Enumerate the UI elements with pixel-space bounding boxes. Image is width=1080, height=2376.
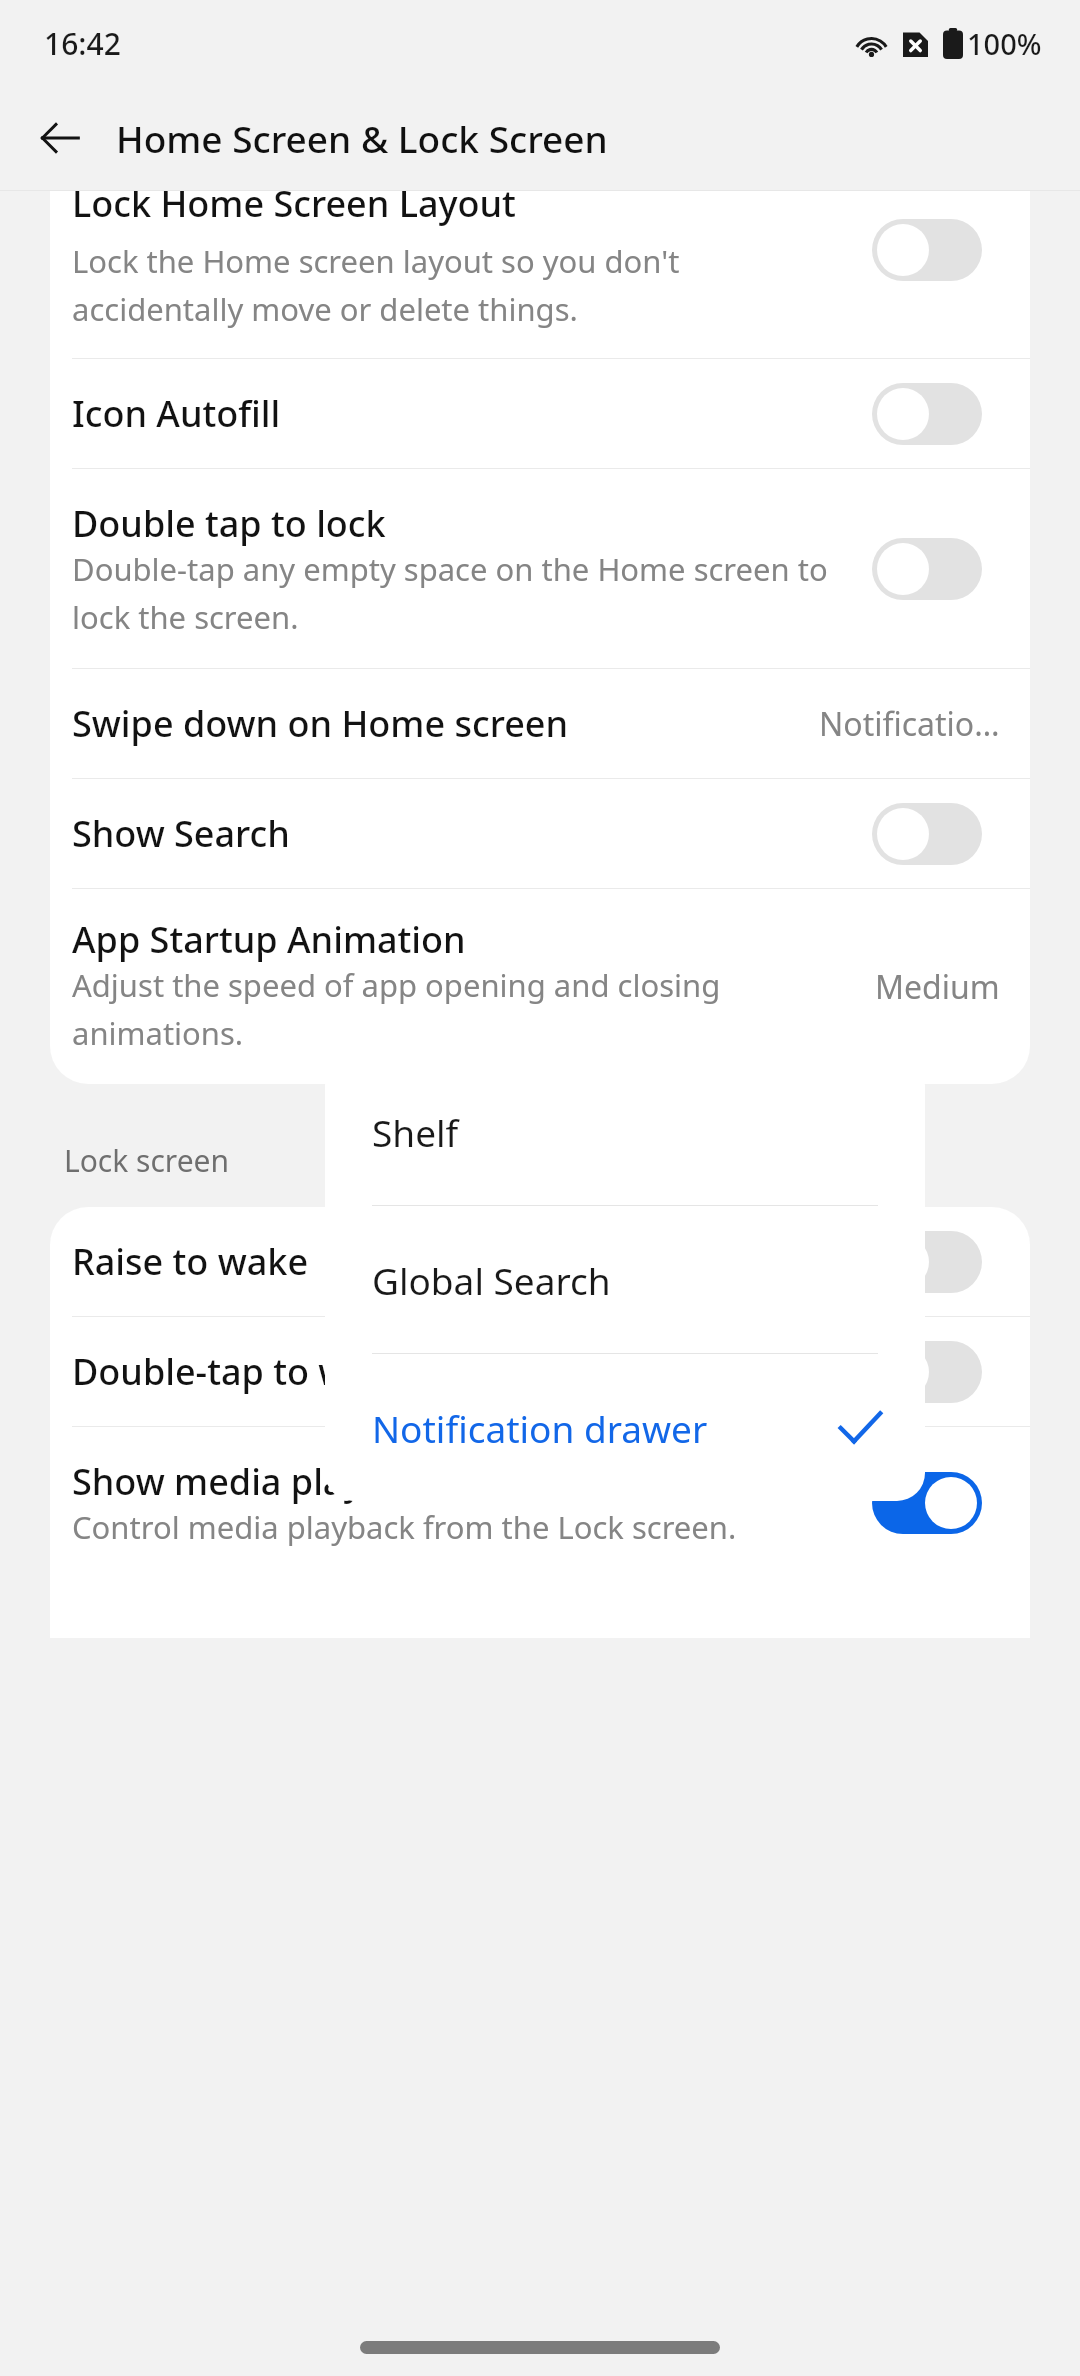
button[interactable]: Global Search xyxy=(325,1206,925,1353)
button[interactable]: Off xyxy=(872,219,982,281)
button[interactable]: App Startup Animation xyxy=(50,889,1030,1084)
button[interactable]: Show Search xyxy=(50,779,1030,888)
staticText: Control media playback from the Lock scr… xyxy=(72,1506,737,1548)
staticText: Notification drawer xyxy=(372,1403,837,1453)
staticText: Icon Autofill xyxy=(72,389,281,438)
button[interactable]: Show media player on Lock screen xyxy=(50,1427,1030,1578)
staticText: Double-tap any empty space on the Home s… xyxy=(72,548,852,638)
staticText: Notificatio… xyxy=(819,702,1000,746)
button[interactable]: Double tap to lock xyxy=(50,469,1030,668)
button[interactable]: Shelf xyxy=(325,1058,925,1205)
staticText: Swipe down on Home screen xyxy=(72,699,803,748)
staticText: Show media player on Lock screen xyxy=(72,1457,664,1506)
staticText: Global Search xyxy=(372,1255,925,1305)
button[interactable]: Back xyxy=(20,98,100,178)
button[interactable]: Icon Autofill xyxy=(50,359,1030,468)
button[interactable]: Off xyxy=(872,1231,982,1293)
button[interactable]: Swipe down on Home screen xyxy=(50,669,1030,778)
button[interactable]: Raise to wake xyxy=(50,1207,1030,1316)
staticText: Medium xyxy=(875,965,1000,1009)
button[interactable]: On xyxy=(872,1472,982,1534)
staticText: Lock the Home screen layout so you don't… xyxy=(72,240,852,330)
button[interactable]: Off xyxy=(872,538,982,600)
staticText: Show Search xyxy=(72,809,290,858)
staticText: Lock Home Screen Layout xyxy=(72,191,516,228)
staticText: Shelf xyxy=(372,1107,925,1157)
button[interactable]: Off xyxy=(872,383,982,445)
staticText: Raise to wake xyxy=(72,1237,309,1286)
staticText: Adjust the speed of app opening and clos… xyxy=(72,964,859,1054)
button[interactable]: Off xyxy=(872,1341,982,1403)
button[interactable]: Double-tap to wake or turn off screen xyxy=(50,1317,1030,1426)
button[interactable]: Lock Home Screen Layout xyxy=(50,191,1030,358)
staticText: Double-tap to wake or turn off screen xyxy=(72,1347,719,1396)
staticText: 16:42 xyxy=(44,23,121,64)
staticText: App Startup Animation xyxy=(72,915,466,964)
staticText: Lock screen xyxy=(64,1140,230,1181)
button[interactable]: Off xyxy=(872,803,982,865)
staticText: 100% xyxy=(967,24,1042,63)
staticText: Double tap to lock xyxy=(72,499,386,548)
staticText: Home Screen & Lock Screen xyxy=(116,113,608,163)
button[interactable]: Notification drawer xyxy=(325,1354,925,1501)
